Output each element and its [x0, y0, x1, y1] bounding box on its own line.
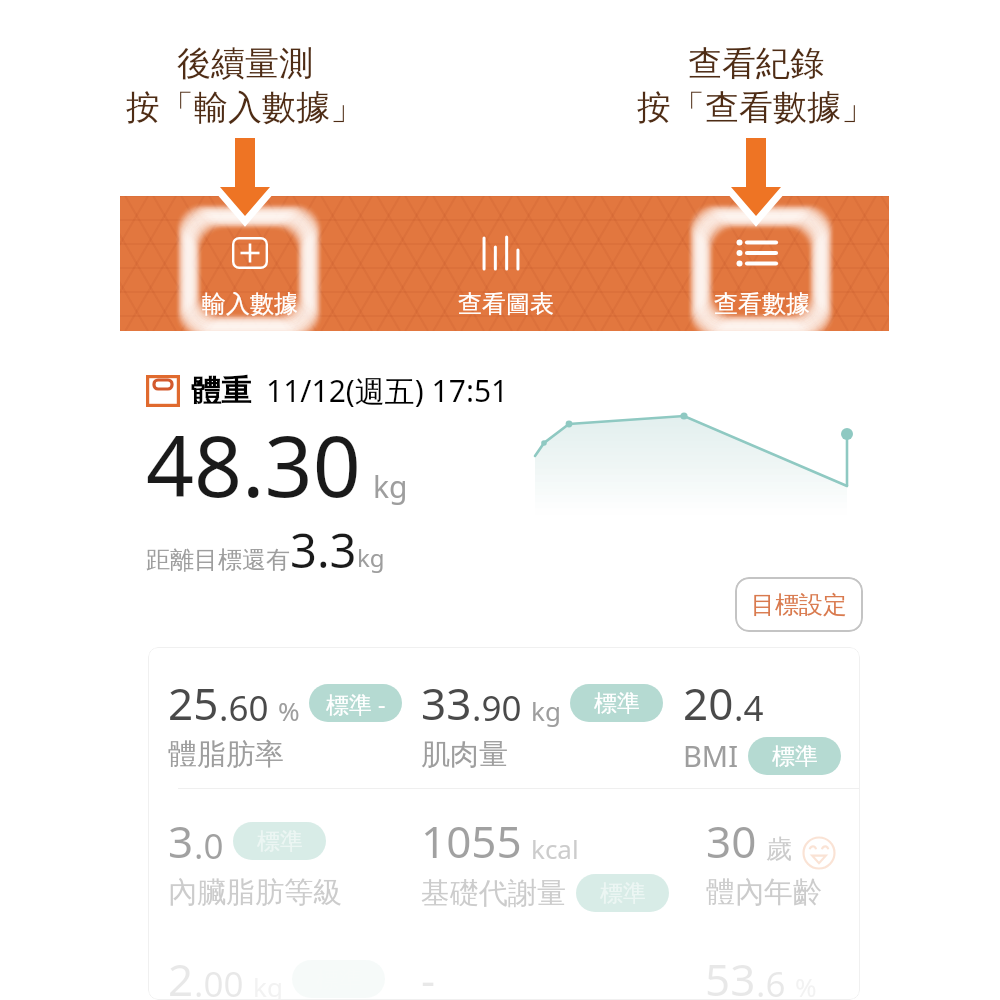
staticText: 1055	[421, 811, 522, 871]
staticText: 33	[421, 673, 472, 733]
staticText: .0	[194, 822, 224, 870]
staticText: kg	[253, 969, 283, 1000]
staticText: 後續量測	[177, 42, 313, 85]
button[interactable]: 目標設定	[735, 577, 863, 632]
staticText: 2	[168, 949, 194, 1000]
staticText: .00	[194, 960, 244, 1000]
staticText: 48.30	[146, 407, 361, 521]
staticText: 按「輸入數據」	[126, 86, 364, 129]
staticText: .60	[219, 684, 269, 732]
staticText: %	[795, 969, 817, 1000]
staticText: 25	[168, 673, 219, 733]
staticText: BMI	[683, 736, 738, 775]
staticText: .4	[734, 684, 764, 732]
staticText: 按「查看數據」	[637, 86, 875, 129]
staticText: .6	[756, 960, 786, 1000]
staticText: 輸入數據	[202, 289, 298, 319]
staticText: 歲	[766, 833, 792, 866]
staticText: kg	[373, 466, 408, 507]
staticText: 查看紀錄	[688, 42, 824, 85]
staticText: 3	[168, 811, 194, 871]
staticText: .90	[472, 684, 522, 732]
staticText: 標準	[594, 689, 640, 718]
staticText: kg	[531, 693, 561, 728]
button[interactable]: 查看圖表	[377, 196, 633, 331]
staticText: 53	[705, 949, 756, 1000]
staticText: 體內年齡	[706, 874, 822, 911]
staticText: 肌肉量	[421, 736, 508, 773]
staticText: 體脂肪率	[168, 736, 284, 773]
button[interactable]: 輸入數據	[120, 196, 377, 331]
staticText: kcal	[531, 831, 579, 866]
staticText: 距離目標還有	[146, 545, 290, 575]
staticText: 30	[706, 811, 757, 871]
staticText: %	[278, 693, 300, 728]
staticText: 11/12(週五) 17:51	[266, 370, 509, 411]
staticText: 內臟脂肪等級	[168, 874, 342, 911]
staticText: 體重	[191, 372, 251, 410]
staticText: 20	[683, 673, 734, 733]
staticText: 標準 -	[326, 688, 386, 719]
staticText: 標準	[772, 742, 818, 771]
staticText: 3.3	[290, 518, 357, 582]
staticText: 查看數據	[714, 289, 810, 319]
staticText: kg	[357, 541, 385, 574]
staticText: 標準	[257, 827, 303, 856]
staticText: -	[421, 949, 436, 1000]
staticText: 查看圖表	[458, 289, 554, 319]
staticText: 標準	[600, 879, 646, 908]
staticText: 目標設定	[751, 590, 847, 620]
staticText: 基礎代謝量	[421, 875, 566, 912]
button[interactable]: 查看數據	[633, 196, 889, 331]
